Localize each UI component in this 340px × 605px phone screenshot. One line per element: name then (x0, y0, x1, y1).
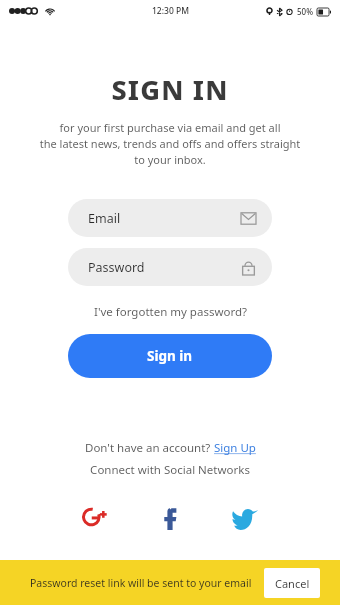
button[interactable]: Sign in (68, 334, 272, 378)
staticText: Connect with Social Networks (0, 462, 340, 478)
button[interactable]: Cancel (264, 568, 320, 598)
staticText: I've forgotten my password? (94, 304, 247, 320)
button[interactable]: Email (68, 199, 272, 237)
staticText: Cancel (275, 576, 310, 591)
staticText: Password (88, 259, 241, 276)
button[interactable]: Password (68, 248, 272, 286)
staticText: Sign Up (214, 440, 256, 456)
staticText: Email (88, 210, 241, 227)
button[interactable]: Sign in with Facebook (153, 500, 187, 534)
button[interactable]: Sign in with Twitter (228, 500, 262, 534)
staticText: Password reset link will be sent to your… (30, 576, 264, 590)
staticText: for your first purchase via email and ge… (22, 120, 318, 167)
staticText: SIGN IN (0, 71, 340, 108)
staticText: Don't have an account? (85, 440, 214, 456)
button[interactable]: Sign in with Google (78, 500, 112, 534)
staticText: 50% (297, 6, 313, 17)
button[interactable]: Sign Up (214, 440, 256, 456)
staticText: Sign in (147, 347, 193, 365)
button[interactable]: I've forgotten my password? (0, 304, 340, 320)
staticText: 12:30 PM (152, 5, 189, 17)
